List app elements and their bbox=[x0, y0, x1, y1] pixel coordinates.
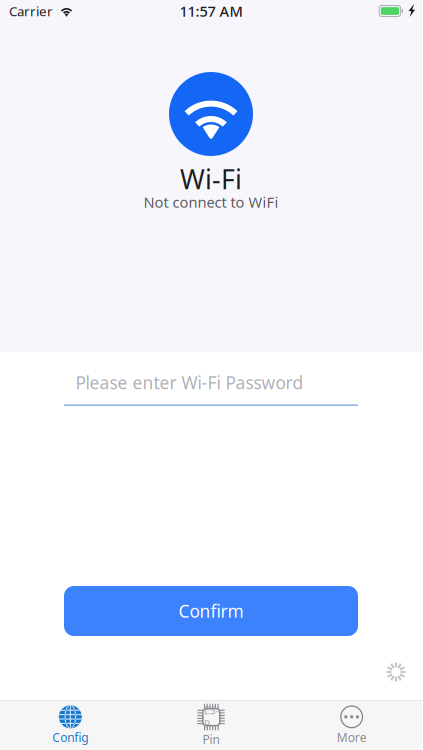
staticText: More bbox=[337, 729, 367, 745]
staticText: ESP bbox=[204, 703, 219, 731]
staticText: 11:57 AM bbox=[179, 1, 242, 21]
button[interactable]: ESP bbox=[141, 701, 281, 750]
staticText: Config bbox=[52, 729, 88, 745]
staticText: Carrier bbox=[9, 2, 53, 20]
button[interactable]: More bbox=[281, 701, 422, 750]
button[interactable]: Config bbox=[0, 701, 141, 750]
staticText: Not connect to WiFi bbox=[143, 192, 278, 212]
staticText: Pin bbox=[202, 731, 219, 747]
staticText: Confirm bbox=[178, 599, 243, 622]
staticText: Wi-Fi bbox=[180, 161, 242, 197]
button[interactable]: Confirm bbox=[64, 586, 358, 636]
staticText: Please enter Wi-Fi Password bbox=[75, 371, 303, 394]
